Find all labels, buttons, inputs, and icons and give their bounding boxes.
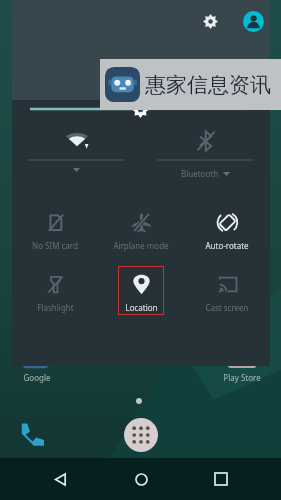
button[interactable]: Home	[121, 459, 161, 499]
staticText: Google	[8, 372, 66, 383]
staticText: Flashlight	[37, 302, 74, 313]
button[interactable]: Auto-rotate	[184, 202, 270, 251]
button[interactable]: User account	[238, 6, 268, 36]
staticText: No SIM card	[32, 240, 78, 251]
staticText: Cast screen	[205, 302, 249, 313]
button[interactable]: Settings	[197, 8, 223, 34]
button[interactable]: Flashlight	[12, 264, 98, 313]
staticText: Location	[125, 302, 158, 313]
button[interactable]: Recent apps	[201, 459, 241, 499]
button[interactable]: Airplane mode	[98, 202, 184, 251]
button[interactable]: 惠家信息资讯	[100, 59, 281, 110]
button[interactable]: Bluetooth	[157, 124, 254, 179]
staticText: Auto-rotate	[205, 240, 249, 251]
staticText: Airplane mode	[113, 240, 169, 251]
staticText: Play Store	[213, 372, 271, 383]
button[interactable]	[28, 124, 125, 172]
button[interactable]: Location	[98, 264, 184, 313]
staticText: Bluetooth	[181, 168, 219, 179]
button[interactable]: All apps	[124, 418, 158, 452]
staticText: 惠家信息资讯	[145, 72, 271, 98]
button[interactable]: No SIM card	[12, 202, 98, 251]
button[interactable]: Cast screen	[184, 264, 270, 313]
button[interactable]: Back	[40, 459, 80, 499]
